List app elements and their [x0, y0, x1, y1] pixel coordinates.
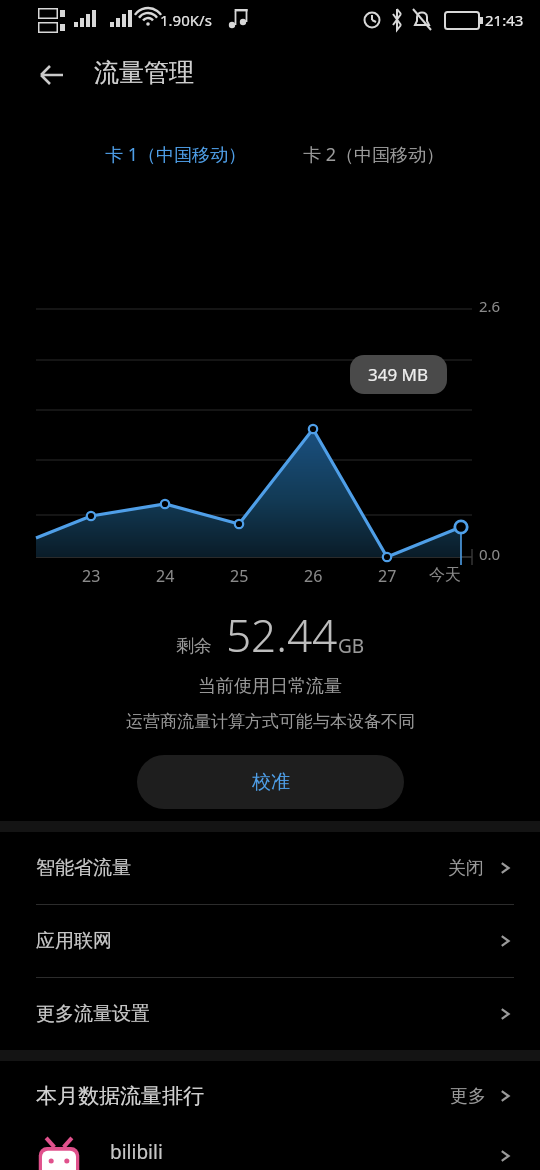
staticText: 校准 — [252, 770, 290, 794]
button[interactable]: 本月数据流量排行 — [0, 1061, 540, 1131]
button[interactable]: 应用联网 — [0, 905, 540, 978]
staticText: 剩余 — [176, 635, 212, 658]
staticText: 流量管理 — [94, 57, 194, 88]
staticText: 0.0 — [479, 544, 501, 564]
staticText: 更多流量设置 — [36, 1002, 150, 1026]
staticText: 24 — [156, 565, 175, 587]
staticText: 27 — [378, 565, 397, 587]
button[interactable]: 卡 1（中国移动） — [76, 110, 274, 168]
staticText: 25 — [230, 565, 249, 587]
staticText: 1.90K/s — [160, 10, 212, 30]
staticText: 智能省流量 — [36, 856, 131, 880]
staticText: 卡 2（中国移动） — [303, 142, 444, 167]
staticText: 本月数据流量排行 — [36, 1083, 204, 1109]
staticText: 2.6 — [479, 296, 501, 316]
button[interactable]: 更多流量设置 — [0, 978, 540, 1050]
staticText: 当前使用日常流量 — [198, 675, 342, 698]
staticText: 应用联网 — [36, 929, 112, 953]
button[interactable]: Back — [28, 51, 76, 99]
staticText: 349 MB — [368, 363, 429, 386]
staticText: 21:43 — [485, 10, 524, 30]
staticText: 运营商流量计算方式可能与本设备不同 — [126, 711, 415, 732]
staticText: bilibili — [110, 1139, 163, 1165]
button[interactable]: bilibili — [0, 1131, 540, 1170]
button[interactable]: 智能省流量 — [0, 832, 540, 905]
staticText: 更多 — [450, 1085, 486, 1108]
staticText: 今天 — [429, 565, 461, 585]
staticText: GB — [338, 633, 365, 659]
button[interactable]: 卡 2（中国移动） — [274, 110, 472, 168]
staticText: 关闭 — [448, 857, 484, 880]
staticText: 23 — [82, 565, 101, 587]
button[interactable]: 校准 — [137, 755, 404, 809]
staticText: 卡 1（中国移动） — [105, 142, 246, 167]
staticText: 52 — [455, 12, 468, 27]
staticText: 52.44 — [226, 605, 338, 665]
staticText: 26 — [304, 565, 323, 587]
